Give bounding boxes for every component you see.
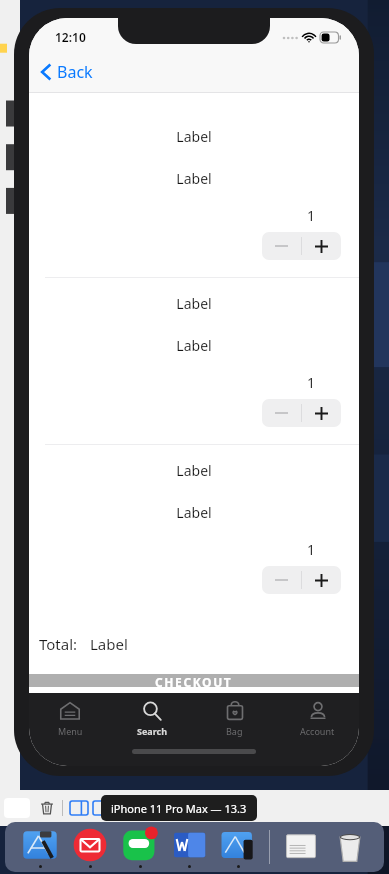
staticText: 1 (29, 206, 315, 225)
button[interactable]: Increase quantity (302, 399, 341, 427)
button[interactable]: Dock app (115, 822, 165, 872)
button[interactable]: Back (29, 52, 359, 92)
staticText: Label (90, 634, 128, 654)
button[interactable]: Decrease quantity (262, 399, 301, 427)
staticText: Bag (226, 725, 243, 737)
button[interactable]: Menu (29, 700, 111, 744)
staticText: Label (29, 336, 359, 355)
button[interactable]: Dock app (15, 822, 65, 872)
staticText: iPhone 11 Pro Max — 13.3 (111, 801, 247, 816)
button[interactable]: Dock app (214, 822, 263, 872)
staticText: Account (300, 725, 335, 737)
staticText: Search (137, 725, 168, 737)
button[interactable]: Delete (38, 799, 56, 817)
button[interactable]: Decrease quantity (262, 232, 301, 260)
button[interactable]: Dock app (165, 822, 214, 872)
button[interactable]: Increase quantity (302, 566, 341, 594)
button[interactable]: Dock app (276, 822, 325, 872)
button[interactable]: Bag (193, 700, 276, 744)
staticText: 12:10 (55, 29, 86, 45)
staticText: Label (29, 461, 359, 480)
button[interactable]: Dock app (325, 822, 374, 872)
staticText: Label (29, 127, 359, 146)
staticText: Label (29, 169, 359, 188)
button[interactable]: Search (111, 700, 193, 744)
staticText: Total: (39, 634, 78, 654)
button[interactable]: Account (276, 700, 359, 744)
button[interactable]: Decrease quantity (262, 566, 301, 594)
staticText: 1 (29, 373, 315, 392)
button[interactable]: CHECKOUT (29, 674, 359, 687)
staticText: 1 (29, 540, 315, 559)
staticText: Back (57, 61, 93, 83)
button[interactable]: Increase quantity (302, 232, 341, 260)
staticText: Menu (58, 725, 83, 737)
staticText: CHECKOUT (155, 674, 233, 687)
button[interactable]: Dock app (65, 822, 115, 872)
staticText: Label (29, 294, 359, 313)
staticText: Label (29, 503, 359, 522)
